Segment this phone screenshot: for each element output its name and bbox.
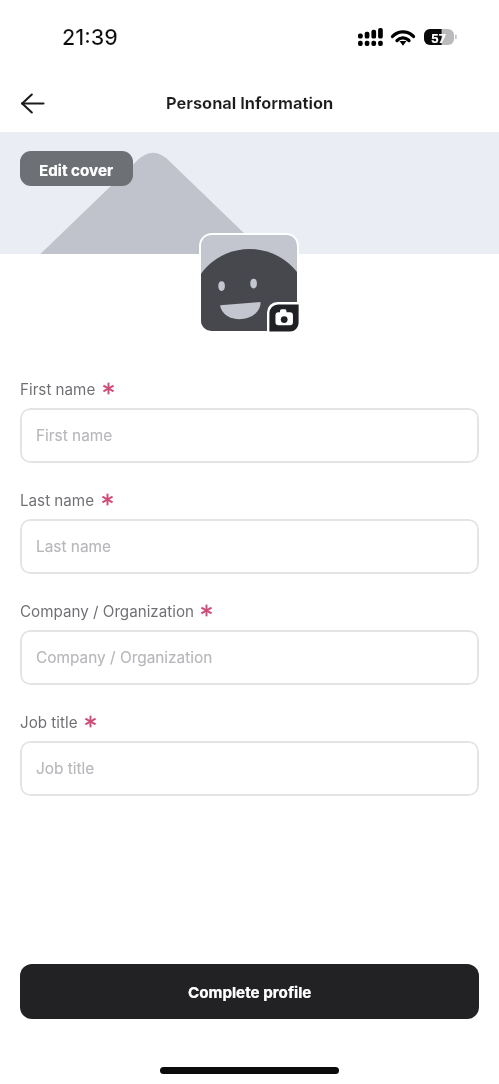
button[interactable]: Back: [11, 82, 53, 124]
button[interactable]: First name: [20, 408, 479, 463]
staticText: Last name: [20, 491, 95, 509]
button[interactable]: Edit cover: [20, 151, 133, 186]
button[interactable]: Last name: [20, 519, 479, 574]
button[interactable]: Change profile photo: [199, 233, 299, 333]
staticText: Last name: [36, 537, 112, 556]
staticText: 57: [431, 31, 446, 46]
staticText: Personal Information: [166, 93, 334, 113]
staticText: Complete profile: [188, 983, 312, 1001]
staticText: Company / Organization: [36, 648, 213, 667]
staticText: First name: [20, 380, 96, 398]
staticText: Edit cover: [39, 161, 114, 179]
staticText: Job title: [20, 713, 78, 731]
staticText: Company / Organization: [20, 602, 194, 620]
staticText: Job title: [36, 759, 95, 778]
button[interactable]: Company / Organization: [20, 630, 479, 685]
button[interactable]: Complete profile: [20, 964, 479, 1019]
button[interactable]: Job title: [20, 741, 479, 796]
staticText: First name: [36, 426, 113, 445]
staticText: 21:39: [62, 24, 118, 50]
